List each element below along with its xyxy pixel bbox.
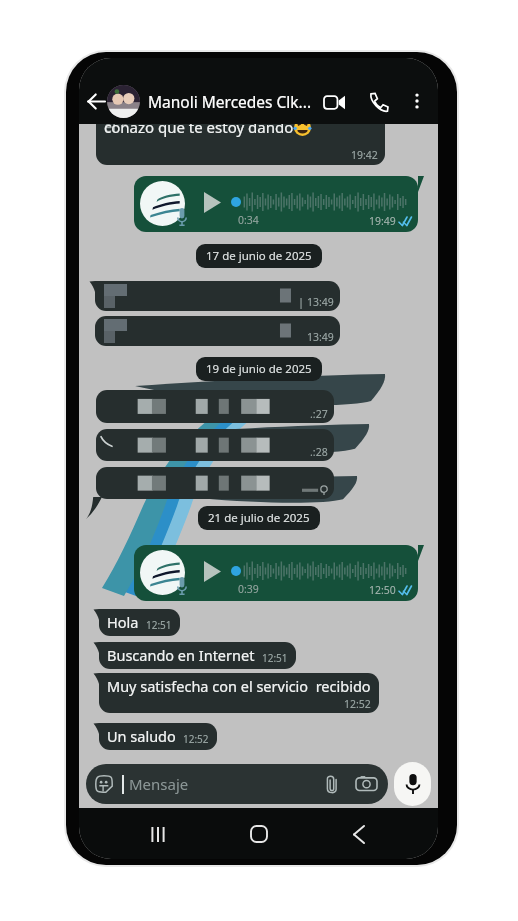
- button[interactable]: [96, 467, 334, 499]
- button[interactable]: Muy satisfecha con el servicio recibido: [99, 673, 379, 713]
- staticText: Un saludo: [107, 726, 176, 746]
- button[interactable]: 19 de junio de 2025: [196, 357, 322, 381]
- button[interactable]: More options: [403, 87, 431, 115]
- staticText: .:27: [310, 407, 328, 421]
- staticText: 19 de junio de 2025: [206, 361, 312, 377]
- staticText: 19:49: [369, 214, 396, 228]
- button[interactable]: Record voice message: [394, 762, 431, 806]
- staticText: coñazo que te estoy dando: [104, 117, 294, 137]
- button[interactable]: Video call: [319, 87, 349, 117]
- staticText: .:28: [310, 445, 328, 459]
- button[interactable]: Hola: [99, 609, 180, 636]
- button[interactable]: 17 de junio de 2025: [196, 244, 322, 268]
- staticText: Mensaje: [129, 774, 325, 794]
- button[interactable]: Recent apps: [136, 812, 180, 856]
- button[interactable]: Back: [82, 87, 111, 116]
- staticText: 13:49: [307, 295, 334, 309]
- button[interactable]: .:27: [96, 390, 334, 423]
- button[interactable]: |: [95, 281, 340, 311]
- button[interactable]: Back: [337, 812, 381, 856]
- button[interactable]: Mensaje: [86, 764, 388, 804]
- staticText: me tienes que estar hasta las pelotas po…: [104, 106, 385, 136]
- staticText: 12:52: [344, 697, 371, 711]
- button[interactable]: me tienes que estar hasta las pelotas po…: [96, 106, 385, 165]
- staticText: Hola: [107, 612, 139, 632]
- button[interactable]: Contact photo: [107, 85, 140, 118]
- staticText: 13:49: [307, 330, 334, 344]
- staticText: 19:42: [351, 148, 378, 162]
- staticText: 12:51: [262, 651, 288, 665]
- button[interactable]: Voice call: [363, 87, 393, 117]
- button[interactable]: Un saludo: [99, 723, 217, 750]
- button[interactable]: .:28: [96, 429, 334, 461]
- button[interactable]: Home: [237, 812, 281, 856]
- staticText: 0:39: [238, 582, 259, 596]
- staticText: Muy satisfecha con el servicio recibido: [107, 676, 371, 696]
- staticText: 17 de junio de 2025: [206, 248, 312, 264]
- staticText: 12:51: [146, 618, 172, 632]
- button[interactable]: 21 de julio de 2025: [198, 506, 320, 530]
- staticText: |: [298, 294, 305, 309]
- staticText: 0:34: [238, 213, 259, 227]
- staticText: 12:52: [183, 732, 209, 746]
- button[interactable]: Buscando en Internet: [99, 642, 296, 669]
- staticText: 12:50: [369, 583, 396, 597]
- staticText: 21 de julio de 2025: [208, 510, 310, 526]
- staticText: Manoli Mercedes Clk...: [148, 91, 312, 112]
- button[interactable]: Voice message: [134, 545, 424, 601]
- staticText: Buscando en Internet: [107, 645, 255, 665]
- button[interactable]: 13:49: [95, 316, 340, 346]
- button[interactable]: Voice message: [134, 176, 424, 232]
